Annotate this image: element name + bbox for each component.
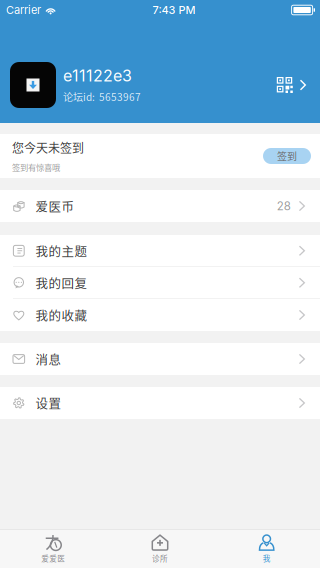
staticText: 设置 [36,394,62,412]
button[interactable]: 我的收藏 [0,299,320,331]
staticText: Carrier [6,3,41,17]
staticText: 签到有惊喜哦 [12,161,60,173]
staticText: 28 [277,199,291,213]
staticText: 我 [263,553,271,564]
staticText: 论坛id: 5653967 [63,89,141,104]
staticText: 爱医币 [36,197,75,215]
button[interactable]: 我的主题 [0,235,320,267]
button[interactable]: 爱医币 [0,190,320,222]
staticText: 诊所 [152,553,168,564]
staticText: e11122e3 [63,66,132,85]
staticText: 我的收藏 [36,306,88,324]
button[interactable]: 爱爱医 [0,530,107,568]
staticText: 7:43 PM [152,3,195,17]
staticText: 我的回复 [36,274,88,292]
button[interactable]: 我的回复 [0,267,320,299]
staticText: 爱爱医 [41,553,65,564]
staticText: 您今天未签到 [12,139,84,156]
staticText: 消息 [36,350,62,368]
button[interactable]: 诊所 [107,530,213,568]
staticText: 签到 [277,149,297,163]
button[interactable]: e11122e3 [0,20,320,123]
button[interactable]: 消息 [0,343,320,375]
button[interactable]: 设置 [0,387,320,419]
button[interactable]: 签到 [263,148,311,164]
button[interactable]: 我 [213,530,320,568]
staticText: 我的主题 [36,242,88,260]
